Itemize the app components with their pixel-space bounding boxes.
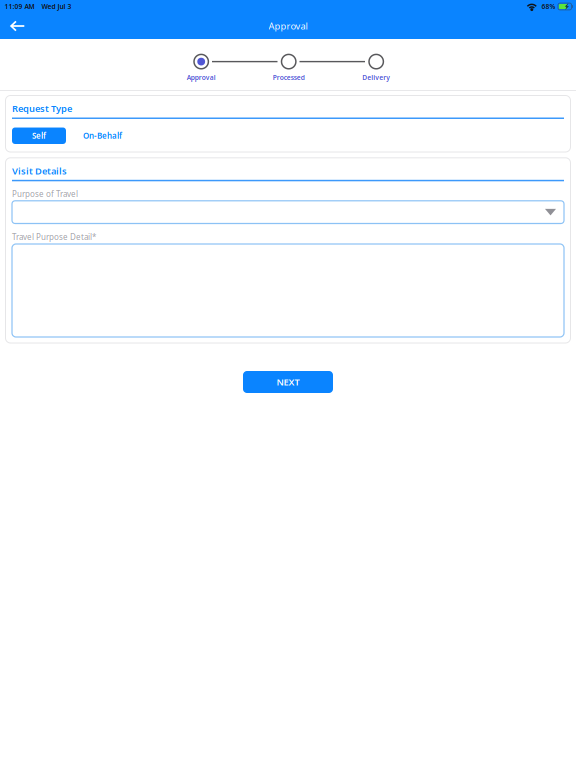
staticText: Approval	[268, 20, 307, 32]
staticText: Self	[32, 130, 46, 141]
staticText: 68%	[542, 2, 556, 11]
button[interactable]: NEXT	[243, 371, 333, 393]
staticText: Purpose of Travel	[12, 188, 78, 199]
staticText: Processed	[273, 73, 305, 82]
button[interactable]: Back	[0, 13, 34, 39]
staticText: Approval	[187, 73, 216, 82]
button[interactable]: Travel Purpose Detail	[12, 244, 564, 337]
staticText: Travel Purpose Detail*	[12, 232, 96, 242]
button[interactable]: Purpose of Travel	[12, 201, 564, 223]
staticText: NEXT	[276, 376, 299, 388]
staticText: Wed Jul 3	[42, 2, 72, 11]
staticText: Visit Details	[12, 165, 67, 177]
button[interactable]: Self	[12, 127, 66, 144]
staticText: On-Behalf	[83, 130, 122, 141]
staticText: Delivery	[362, 73, 390, 82]
staticText: 11:09 AM	[5, 2, 35, 11]
button[interactable]: On-Behalf	[66, 127, 139, 144]
staticText: Request Type	[12, 102, 72, 115]
